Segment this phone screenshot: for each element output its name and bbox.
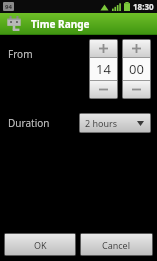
staticText: 94 xyxy=(5,3,12,11)
staticText: 00 xyxy=(129,60,144,78)
button[interactable]: Cancel xyxy=(81,234,152,255)
staticText: Duration xyxy=(8,116,50,130)
staticText: Cancel xyxy=(102,239,131,251)
staticText: Time Range xyxy=(31,17,90,31)
staticText: 14 xyxy=(96,60,111,78)
staticText: OK xyxy=(34,239,47,251)
button[interactable]: 2 hours xyxy=(80,114,150,132)
button[interactable]: Decrement xyxy=(90,81,117,98)
button[interactable]: Increment xyxy=(90,40,117,57)
other: Signal xyxy=(112,3,121,11)
other: Battery xyxy=(124,2,130,11)
staticText: 18:30 xyxy=(133,1,154,12)
staticText: 2 hours xyxy=(85,117,118,129)
button[interactable]: Increment xyxy=(123,40,150,57)
button[interactable]: Decrement xyxy=(123,81,150,98)
button[interactable]: 14 xyxy=(90,58,117,80)
button[interactable]: 00 xyxy=(123,58,150,80)
other: Wi-Fi xyxy=(100,3,109,11)
button[interactable]: OK xyxy=(5,234,75,255)
staticText: From xyxy=(8,47,33,61)
